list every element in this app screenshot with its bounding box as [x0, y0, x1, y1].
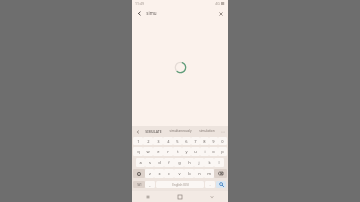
staticText: ,	[149, 182, 151, 187]
button[interactable]: k	[204, 158, 214, 167]
staticText: o	[212, 149, 215, 154]
button[interactable]: j	[194, 158, 204, 167]
staticText: b	[188, 171, 191, 176]
staticText: simulation	[199, 129, 215, 133]
button[interactable]: simu	[146, 10, 216, 16]
staticText: simu	[146, 10, 157, 16]
staticText: y	[185, 149, 188, 154]
staticText: 11:49	[135, 1, 144, 6]
button[interactable]: 8	[200, 137, 209, 145]
staticText: 5	[176, 139, 179, 144]
button[interactable]: l	[214, 158, 224, 167]
staticText: 1	[137, 139, 140, 144]
staticText: 4	[167, 139, 170, 144]
button[interactable]: i	[200, 147, 209, 156]
button[interactable]: f	[164, 158, 174, 167]
button[interactable]: Search	[216, 181, 226, 188]
staticText: 8	[203, 139, 206, 144]
button[interactable]: simulation	[194, 129, 219, 133]
other: Backspace	[218, 171, 223, 176]
staticText: 6	[185, 139, 188, 144]
button[interactable]: ,	[145, 181, 155, 188]
button[interactable]: r	[163, 147, 173, 156]
button[interactable]: 6	[182, 137, 191, 145]
button[interactable]: 9	[209, 137, 218, 145]
button[interactable]: Backspace	[214, 169, 227, 178]
staticText: w	[146, 149, 150, 154]
button[interactable]: 4	[163, 137, 173, 145]
button[interactable]: e	[153, 147, 163, 156]
staticText: k	[208, 160, 211, 165]
staticText: 0	[221, 139, 224, 144]
button[interactable]: 7	[191, 137, 200, 145]
staticText: d	[158, 160, 161, 165]
button[interactable]: English (US)	[156, 181, 204, 188]
button[interactable]: More	[219, 128, 226, 135]
button[interactable]: y	[182, 147, 191, 156]
staticText: r	[167, 149, 169, 154]
button[interactable]: Recents	[132, 191, 164, 202]
staticText: simultaneously	[169, 129, 192, 133]
button[interactable]: p	[218, 147, 227, 156]
staticText: p	[221, 149, 224, 154]
button[interactable]: h	[184, 158, 194, 167]
button[interactable]: m	[204, 169, 214, 178]
button[interactable]: g	[174, 158, 184, 167]
button[interactable]: Home	[164, 191, 196, 202]
button[interactable]: u	[191, 147, 200, 156]
staticText: SIMULATE	[145, 129, 162, 134]
staticText: f	[168, 160, 170, 165]
staticText: 3	[157, 139, 160, 144]
button[interactable]: SIMULATE	[141, 129, 166, 134]
staticText: 4G	[215, 1, 220, 6]
staticText: g	[178, 160, 181, 165]
button[interactable]: Clear	[216, 9, 225, 18]
staticText: m	[207, 171, 211, 176]
button[interactable]: Previous	[134, 128, 141, 135]
button[interactable]: z	[145, 169, 154, 178]
button[interactable]: Back	[135, 9, 144, 18]
staticText: v	[178, 171, 181, 176]
staticText: j	[198, 160, 200, 165]
button[interactable]: 0	[218, 137, 227, 145]
staticText: !#1	[137, 183, 142, 187]
staticText: i	[204, 149, 206, 154]
button[interactable]: 3	[153, 137, 163, 145]
staticText: English (US)	[172, 183, 189, 187]
button[interactable]: t	[173, 147, 182, 156]
staticText: h	[188, 160, 191, 165]
staticText: x	[158, 171, 161, 176]
button[interactable]: s	[145, 158, 154, 167]
button[interactable]: !#1	[133, 181, 145, 188]
staticText: n	[198, 171, 201, 176]
button[interactable]: a	[136, 158, 145, 167]
button[interactable]: 2	[143, 137, 153, 145]
staticText: 9	[212, 139, 215, 144]
staticText: .	[209, 182, 211, 187]
button[interactable]: Back	[196, 191, 228, 202]
staticText: 2	[147, 139, 150, 144]
button[interactable]: v	[174, 169, 184, 178]
staticText: e	[157, 149, 160, 154]
button[interactable]: b	[184, 169, 194, 178]
button[interactable]: x	[154, 169, 164, 178]
staticText: z	[149, 171, 151, 176]
button[interactable]: o	[209, 147, 218, 156]
button[interactable]: 5	[173, 137, 182, 145]
staticText: u	[194, 149, 197, 154]
button[interactable]: Shift	[133, 169, 145, 178]
button[interactable]: simultaneously	[166, 129, 194, 133]
staticText: q	[137, 149, 140, 154]
button[interactable]: w	[143, 147, 153, 156]
staticText: t	[177, 149, 179, 154]
button[interactable]: d	[154, 158, 164, 167]
staticText: 7	[194, 139, 197, 144]
staticText: s	[149, 160, 151, 165]
button[interactable]: c	[164, 169, 174, 178]
staticText: c	[168, 171, 170, 176]
button[interactable]: 1	[133, 137, 143, 145]
button[interactable]: n	[194, 169, 204, 178]
other: Shift	[137, 172, 141, 176]
button[interactable]: q	[133, 147, 143, 156]
